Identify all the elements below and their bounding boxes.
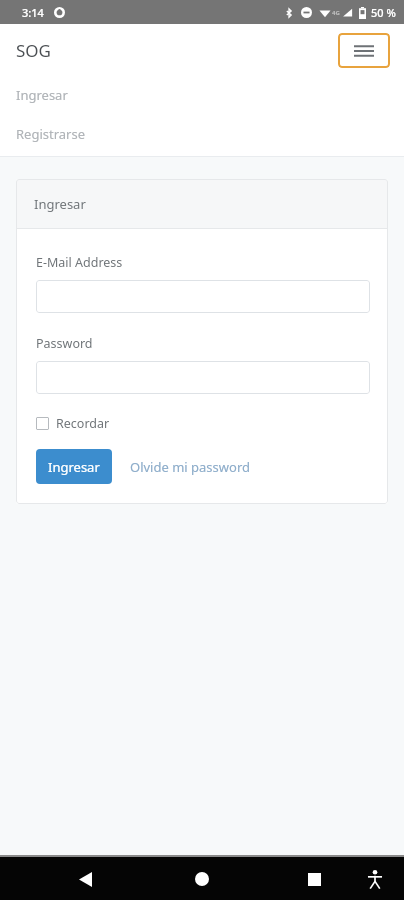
staticText: Ingresar <box>34 195 86 213</box>
button[interactable]: Home <box>185 862 219 896</box>
button[interactable]: Recordar <box>36 415 110 432</box>
staticText: Ingresar <box>16 86 68 104</box>
button[interactable]: Ingresar <box>36 449 112 484</box>
staticText: Recordar <box>56 415 110 432</box>
staticText: 3:14 <box>22 5 44 20</box>
button[interactable]: Accessibility <box>358 862 392 896</box>
button[interactable] <box>36 361 370 394</box>
button[interactable]: Ingresar <box>0 76 404 114</box>
staticText: 4G <box>332 9 340 17</box>
staticText: Registrarse <box>16 125 86 143</box>
button[interactable]: Menu <box>338 33 390 68</box>
staticText: Password <box>36 335 93 352</box>
button[interactable]: Recent apps <box>297 862 331 896</box>
staticText: E-Mail Address <box>36 254 123 271</box>
staticText: Olvide mi password <box>130 458 250 476</box>
button[interactable]: Olvide mi password <box>122 450 258 484</box>
button[interactable]: Registrarse <box>0 114 404 153</box>
button[interactable] <box>36 280 370 313</box>
button[interactable]: Back <box>68 862 102 896</box>
staticText: Ingresar <box>48 458 100 476</box>
staticText: 50 % <box>371 5 396 20</box>
staticText: SOG <box>16 39 51 62</box>
